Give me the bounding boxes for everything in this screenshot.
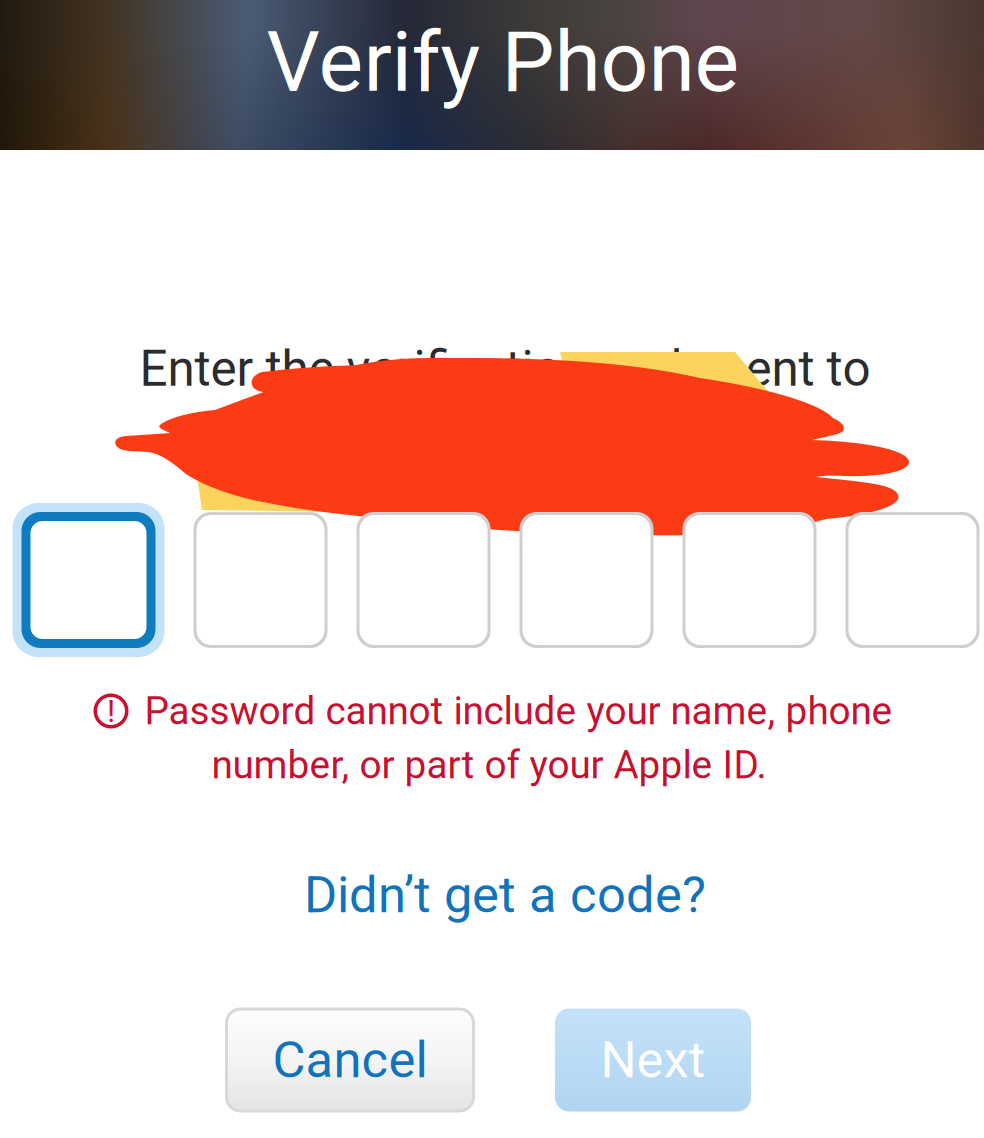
staticText: Enter the verification code sent to bbox=[139, 340, 870, 398]
staticText: Verify Phone bbox=[266, 13, 739, 111]
button[interactable]: Next bbox=[555, 1008, 751, 1111]
button[interactable]: Didn’t get a code? bbox=[285, 860, 725, 930]
button[interactable]: Cancel bbox=[226, 1009, 473, 1111]
staticText: number, or part of your Apple ID. bbox=[211, 742, 766, 788]
staticText: Next bbox=[600, 1030, 705, 1090]
staticText: Didn’t get a code? bbox=[304, 865, 706, 925]
staticText: Password cannot include your name, phone bbox=[144, 688, 892, 734]
staticText: Cancel bbox=[272, 1030, 427, 1090]
staticText: ! bbox=[107, 692, 115, 730]
